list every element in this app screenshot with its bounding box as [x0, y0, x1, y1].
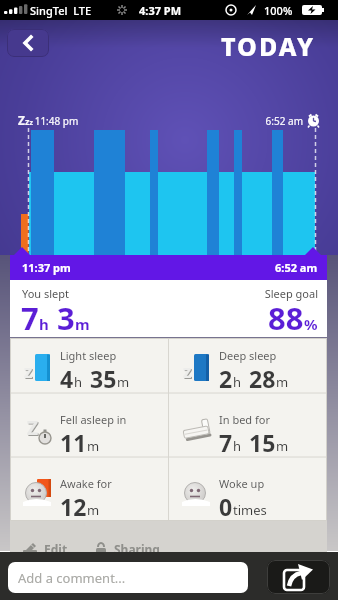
- staticText: Zzz 11:48 pm: [18, 112, 79, 128]
- staticText: 7: [219, 427, 233, 458]
- staticText: 11:37 pm: [22, 260, 71, 275]
- button[interactable]: [7, 29, 49, 57]
- button[interactable]: Edit: [22, 541, 68, 557]
- staticText: 3: [57, 297, 75, 339]
- staticText: 28: [249, 363, 276, 394]
- staticText: h: [233, 373, 242, 391]
- staticText: Z: [28, 416, 40, 442]
- staticText: 6:52 am: [275, 260, 318, 275]
- staticText: Awake for: [60, 476, 112, 491]
- staticText: z: [25, 361, 34, 384]
- staticText: Sleep goal: [10, 286, 318, 301]
- button[interactable]: Sharing: [94, 541, 160, 557]
- staticText: m: [276, 437, 289, 455]
- staticText: m: [87, 437, 100, 455]
- staticText: Light sleep: [60, 348, 117, 363]
- staticText: Sharing: [114, 541, 160, 557]
- staticText: h: [39, 314, 49, 334]
- staticText: m: [87, 501, 100, 519]
- staticText: 4: [60, 363, 74, 394]
- staticText: 7: [21, 297, 39, 339]
- staticText: 100%: [264, 3, 293, 18]
- staticText: z: [24, 360, 33, 383]
- staticText: Woke up: [219, 476, 265, 491]
- staticText: times: [233, 501, 267, 519]
- staticText: 35: [90, 363, 117, 394]
- staticText: m: [117, 373, 130, 391]
- staticText: Edit: [44, 541, 68, 557]
- staticText: z: [183, 360, 192, 383]
- staticText: 6:52 am: [245, 114, 303, 128]
- staticText: Z: [27, 415, 39, 441]
- button[interactable]: [267, 560, 330, 594]
- staticText: 88: [268, 297, 304, 339]
- staticText: z: [184, 361, 193, 384]
- staticText: h: [74, 373, 83, 391]
- staticText: 15: [249, 427, 276, 458]
- staticText: 0: [219, 491, 233, 522]
- staticText: 2: [219, 363, 233, 394]
- staticText: Deep sleep: [219, 348, 277, 363]
- staticText: You slept: [22, 286, 70, 301]
- staticText: h: [233, 437, 242, 455]
- staticText: 12: [60, 491, 87, 522]
- staticText: TODAY: [0, 29, 315, 63]
- staticText: 4:37 PM: [139, 3, 182, 18]
- staticText: m: [75, 314, 90, 334]
- staticText: SingTel LTE: [30, 3, 92, 18]
- staticText: 11: [60, 427, 87, 458]
- button[interactable]: Add a comment...: [8, 562, 248, 593]
- staticText: %: [304, 314, 318, 334]
- staticText: m: [276, 373, 289, 391]
- staticText: Fell asleep in: [60, 412, 127, 427]
- staticText: In bed for: [219, 412, 270, 427]
- staticText: Add a comment...: [18, 569, 126, 587]
